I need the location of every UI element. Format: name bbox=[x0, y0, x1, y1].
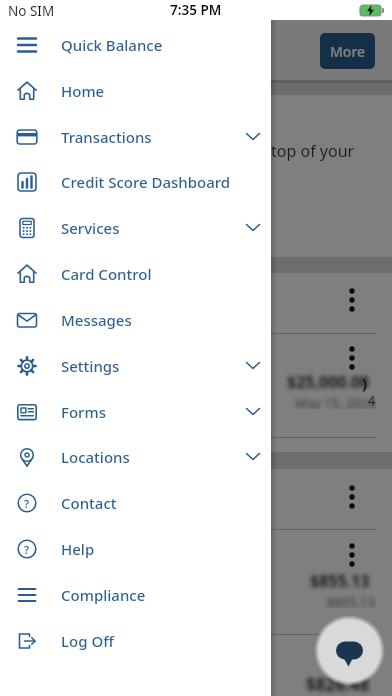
staticText: Help bbox=[61, 539, 95, 559]
button[interactable]: Home bbox=[0, 68, 271, 114]
staticText: Credit Score Dashboard bbox=[61, 172, 231, 192]
staticText: 4 bbox=[368, 392, 376, 409]
staticText: ? bbox=[24, 542, 30, 557]
staticText: ) bbox=[362, 373, 368, 393]
staticText: Quick Balance bbox=[61, 35, 163, 55]
staticText: Card Control bbox=[61, 264, 152, 284]
staticText: Log Off bbox=[61, 631, 114, 651]
button[interactable]: Log Off bbox=[0, 618, 271, 664]
button[interactable]: More bbox=[320, 33, 375, 69]
staticText: Transactions bbox=[61, 127, 152, 147]
staticText: $25,000.00 bbox=[287, 371, 370, 393]
staticText: May 15, 2024 bbox=[295, 394, 376, 409]
staticText: ? bbox=[24, 496, 30, 511]
button[interactable]: Card Control bbox=[0, 251, 271, 297]
button[interactable]: Transactions bbox=[0, 114, 271, 160]
button[interactable]: Forms bbox=[0, 389, 271, 435]
staticText: Messages bbox=[61, 310, 132, 330]
staticText: Settings bbox=[61, 356, 120, 376]
button[interactable]: Messages bbox=[0, 297, 271, 343]
staticText: Forms bbox=[61, 402, 106, 422]
button[interactable] bbox=[309, 610, 390, 691]
staticText: $855.13 bbox=[327, 593, 376, 608]
button[interactable]: Compliance bbox=[0, 572, 271, 618]
button[interactable]: Credit Score Dashboard bbox=[0, 159, 271, 205]
button[interactable]: Quick Balance bbox=[0, 22, 271, 68]
staticText: $855.13 bbox=[310, 570, 370, 592]
staticText: Contact bbox=[61, 493, 117, 513]
button[interactable]: Locations bbox=[0, 434, 271, 480]
staticText: Compliance bbox=[61, 585, 146, 605]
staticText: 7:35 PM bbox=[170, 1, 222, 19]
staticText: Home bbox=[61, 81, 105, 101]
staticText: More bbox=[330, 42, 366, 61]
button[interactable]: ? bbox=[0, 526, 271, 572]
button[interactable]: Services bbox=[0, 205, 271, 251]
button[interactable]: ? bbox=[0, 480, 271, 526]
staticText: Services bbox=[61, 218, 120, 238]
staticText: Locations bbox=[61, 447, 130, 467]
button[interactable]: Settings bbox=[0, 343, 271, 389]
staticText: top of your bbox=[271, 140, 355, 162]
staticText: No SIM bbox=[8, 2, 55, 20]
staticText: $826.48 bbox=[306, 673, 370, 696]
